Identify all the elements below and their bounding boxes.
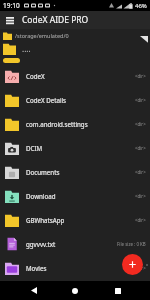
staticText: 19:10 (3, 1, 20, 10)
button[interactable]: CodeX Details (0, 88, 150, 112)
staticText: <dir> (135, 169, 146, 175)
staticText: <dir> (135, 217, 146, 223)
button[interactable]: Home (65, 281, 85, 300)
button[interactable]: com.android.settings (0, 112, 150, 136)
button[interactable]: .... (0, 42, 150, 64)
staticText: Download (26, 192, 135, 200)
staticText: File size : 0 KB (117, 241, 146, 247)
staticText: <dir> (135, 265, 146, 271)
staticText: <dir> (135, 193, 146, 199)
button[interactable]: Recent apps (108, 281, 128, 300)
staticText: com.android.settings (26, 120, 135, 128)
button[interactable]: GBWhatsApp (0, 208, 150, 232)
button[interactable]: DCIM (0, 136, 150, 160)
staticText: Documents (26, 168, 135, 176)
staticText: CodeX AIDE PRO (22, 14, 89, 26)
button[interactable]: ggvvvv.txt (0, 232, 150, 256)
button[interactable]: Add new file (122, 254, 143, 275)
staticText: GBWhatsApp (26, 216, 135, 224)
staticText: <dir> (135, 145, 146, 151)
button[interactable]: Download (0, 184, 150, 208)
staticText: DCIM (26, 144, 135, 152)
button[interactable]: CodeX (0, 64, 150, 88)
staticText: Movies (26, 264, 135, 272)
staticText: <dir> (135, 97, 146, 103)
staticText: 46% (135, 2, 147, 10)
staticText: CodeX (26, 72, 135, 80)
staticText: CodeX Details (26, 96, 135, 104)
staticText: /storage/emulated/0 (15, 32, 69, 39)
staticText: .... (22, 43, 31, 54)
staticText: ggvvvv.txt (26, 240, 117, 248)
button[interactable]: Documents (0, 160, 150, 184)
button[interactable]: Back (24, 281, 44, 300)
button[interactable]: Movies (0, 256, 150, 280)
staticText: <dir> (135, 73, 146, 79)
staticText: <dir> (135, 121, 146, 127)
button[interactable]: Navigation menu (0, 11, 20, 29)
